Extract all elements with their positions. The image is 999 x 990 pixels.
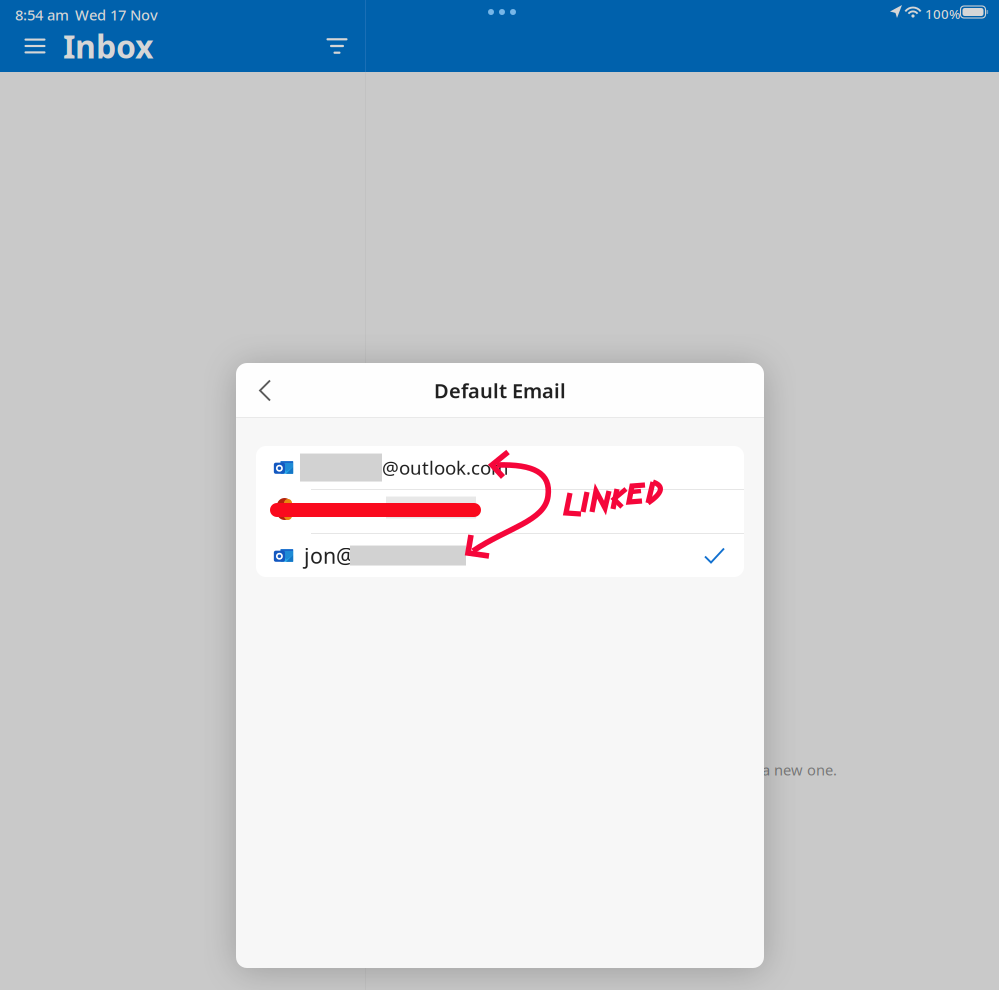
button[interactable]: Filter: [315, 24, 359, 68]
staticText: 100%: [925, 5, 960, 23]
button[interactable]: Back: [245, 368, 285, 412]
button[interactable]: jon@: [256, 534, 744, 577]
staticText: Inbox: [63, 25, 153, 67]
button[interactable]: [256, 490, 744, 533]
staticText: Default Email: [434, 377, 566, 404]
staticText: jon@: [304, 541, 355, 570]
staticText: Wed 17 Nov: [75, 5, 158, 24]
button[interactable]: Menu: [12, 23, 58, 69]
staticText: 8:54 am: [15, 5, 69, 24]
staticText: @outlook.com: [382, 455, 508, 480]
staticText: a new one.: [762, 760, 837, 779]
button[interactable]: @outlook.com: [256, 446, 744, 489]
